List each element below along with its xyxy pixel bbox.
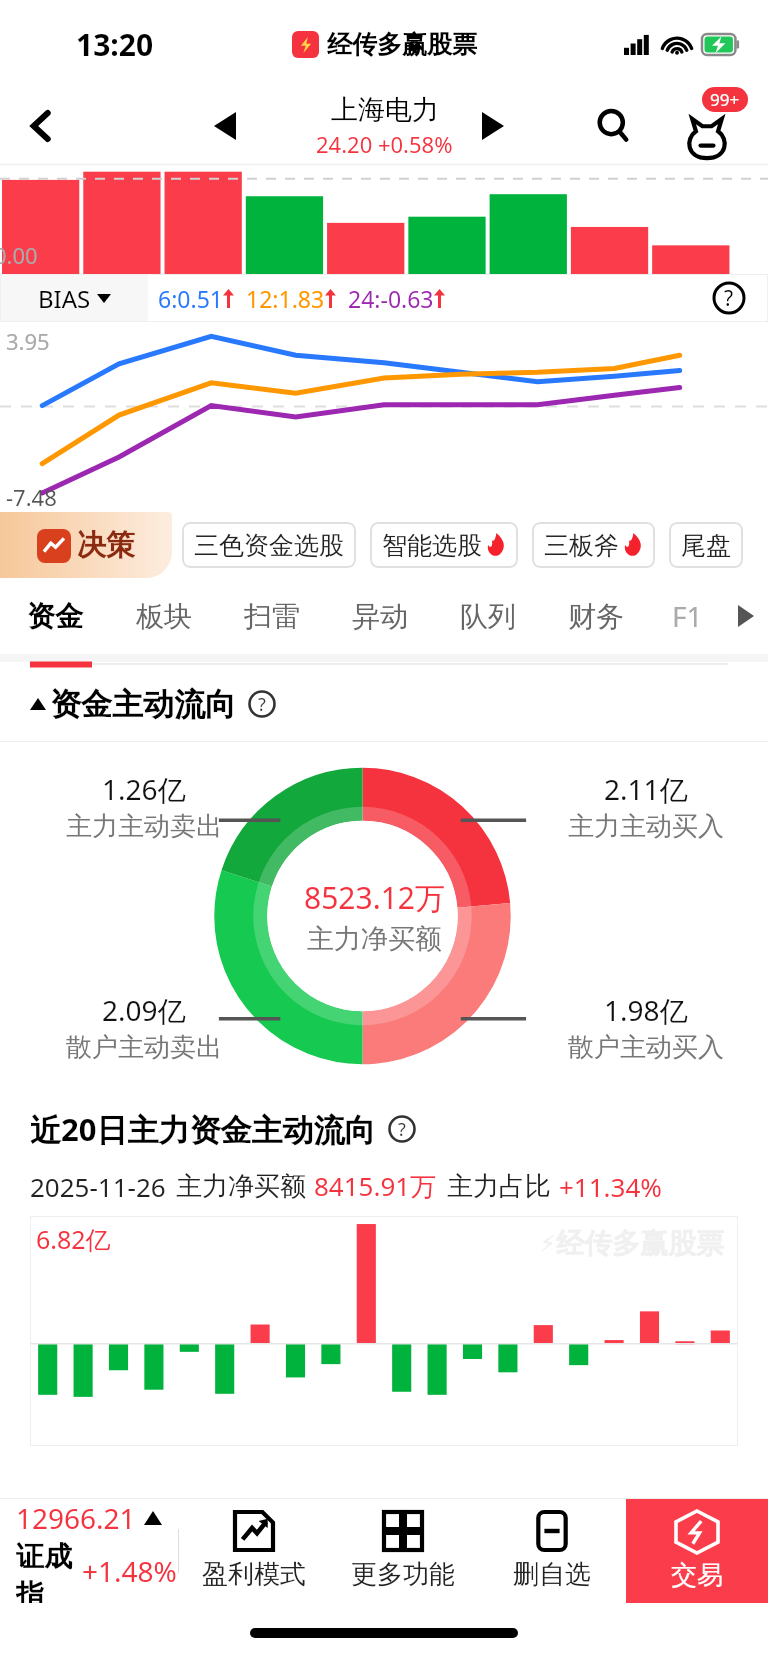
button[interactable]: Back: [14, 98, 70, 154]
staticText: 24:-0.63: [348, 283, 434, 314]
staticText: +1.48%: [82, 1552, 177, 1590]
staticText: 2025-11-26: [30, 1169, 166, 1204]
button[interactable]: 尾盘: [669, 522, 743, 568]
staticText: 智能选股: [382, 530, 482, 561]
staticText: 13:20: [76, 24, 154, 65]
staticText: ?: [258, 692, 266, 717]
staticText: 盈利模式: [202, 1558, 306, 1591]
staticText: 主力主动买入: [568, 810, 724, 843]
staticText: ⚡: [540, 1231, 556, 1257]
button[interactable]: Help: [246, 688, 278, 720]
staticText: 更多功能: [351, 1558, 455, 1591]
staticText: 主力净买额: [176, 1170, 306, 1203]
staticText: 交易: [671, 1559, 723, 1592]
staticText: 1.26亿: [102, 770, 186, 808]
staticText: 经传多赢股票: [556, 1226, 724, 1261]
button[interactable]: Search: [586, 98, 642, 154]
staticText: ?: [724, 284, 734, 313]
staticText: 资金: [27, 599, 83, 634]
button[interactable]: 12966.21: [0, 1499, 178, 1603]
button[interactable]: 智能选股: [370, 522, 518, 568]
button[interactable]: 三板斧: [532, 522, 655, 568]
button[interactable]: 异动: [326, 578, 434, 654]
button[interactable]: F1: [650, 578, 724, 654]
staticText: 99+: [710, 88, 740, 111]
staticText: 队列: [460, 599, 516, 634]
button[interactable]: 财务: [542, 578, 650, 654]
staticText: 散户主动卖出: [66, 1031, 222, 1064]
staticText: -7.48: [6, 482, 57, 512]
staticText: 12966.21: [16, 1499, 136, 1537]
staticText: 近20日主力资金主动流向: [30, 1108, 376, 1150]
staticText: 板块: [136, 599, 192, 634]
button[interactable]: 盈利模式: [179, 1499, 328, 1603]
staticText: 8415.91万: [314, 1168, 437, 1204]
button[interactable]: Help: [710, 279, 748, 317]
button[interactable]: Messages: [670, 89, 744, 163]
staticText: 8523.12万: [304, 877, 445, 918]
staticText: 0.00: [0, 240, 38, 270]
staticText: 资金主动流向: [50, 685, 236, 724]
button[interactable]: 交易: [626, 1499, 768, 1603]
button[interactable]: Help: [386, 1113, 418, 1145]
button[interactable]: More tabs: [724, 578, 768, 654]
staticText: 12:1.83: [246, 283, 325, 314]
staticText: 经传多赢股票: [327, 29, 477, 60]
staticText: 2.11亿: [604, 770, 688, 808]
staticText: 决策: [77, 527, 135, 564]
staticText: 主力主动卖出: [66, 810, 222, 843]
staticText: 三色资金选股: [194, 530, 344, 561]
staticText: BIAS: [38, 282, 91, 315]
staticText: 异动: [352, 599, 408, 634]
button[interactable]: 更多功能: [328, 1499, 477, 1603]
staticText: 上海电力: [331, 93, 439, 127]
staticText: +11.34%: [559, 1169, 662, 1204]
button[interactable]: BIAS: [0, 274, 148, 322]
button[interactable]: Next stock: [468, 101, 518, 151]
staticText: 主力占比: [447, 1170, 551, 1203]
staticText: 三板斧: [544, 530, 619, 561]
staticText: 1.98亿: [604, 991, 688, 1029]
button[interactable]: 删自选: [477, 1499, 626, 1603]
staticText: 主力净买额: [307, 922, 442, 956]
staticText: ?: [398, 1117, 406, 1142]
button[interactable]: 板块: [109, 578, 218, 654]
staticText: 扫雷: [244, 599, 300, 634]
staticText: 24.20 +0.58%: [316, 129, 453, 159]
staticText: 财务: [568, 599, 624, 634]
button[interactable]: 决策: [0, 512, 172, 578]
staticText: 6.82亿: [36, 1222, 111, 1256]
staticText: 6:0.51: [158, 283, 223, 314]
button[interactable]: 资金: [0, 578, 109, 654]
staticText: 尾盘: [681, 530, 731, 561]
button[interactable]: 队列: [434, 578, 542, 654]
staticText: 证成指: [16, 1539, 78, 1603]
button[interactable]: 三色资金选股: [182, 522, 356, 568]
staticText: 3.95: [6, 326, 50, 356]
staticText: 散户主动买入: [568, 1031, 724, 1064]
staticText: F1: [672, 597, 703, 635]
button[interactable]: Previous stock: [200, 101, 250, 151]
staticText: 删自选: [513, 1558, 591, 1591]
button[interactable]: 扫雷: [218, 578, 326, 654]
staticText: 2.09亿: [102, 991, 186, 1029]
